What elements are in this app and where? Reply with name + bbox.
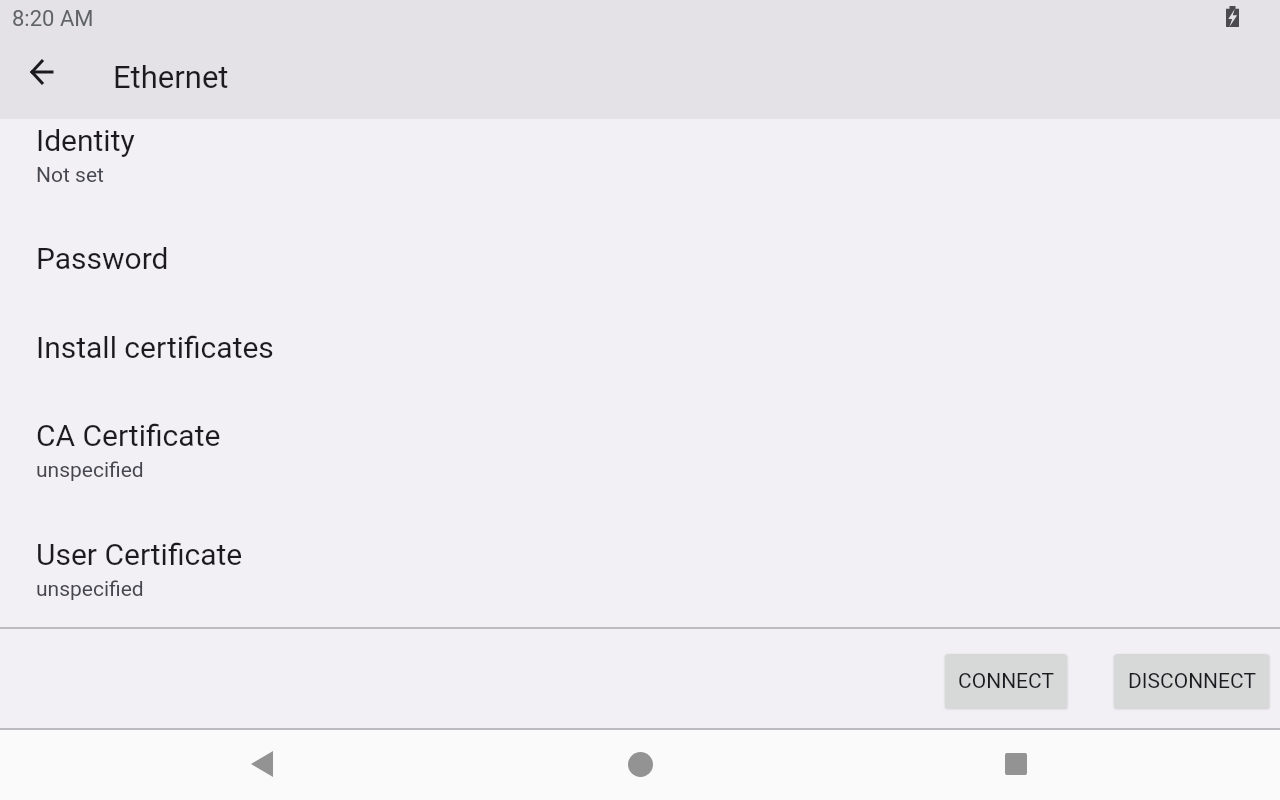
button[interactable]: CONNECT xyxy=(945,654,1067,708)
staticText: Install certificates xyxy=(36,330,274,365)
staticText: Password xyxy=(36,241,169,276)
button[interactable]: Install certificates xyxy=(0,293,1280,383)
staticText: DISCONNECT xyxy=(1128,669,1256,694)
other: Battery charging xyxy=(1226,6,1239,27)
staticText: CONNECT xyxy=(958,669,1054,694)
staticText: unspecified xyxy=(36,458,144,483)
staticText: unspecified xyxy=(36,577,144,602)
button[interactable]: Home xyxy=(616,740,664,788)
staticText: Ethernet xyxy=(113,59,229,95)
button[interactable]: Back xyxy=(238,740,286,788)
button[interactable]: Navigate up xyxy=(18,48,66,96)
button[interactable]: Password xyxy=(0,204,1280,293)
button[interactable]: Identity xyxy=(0,119,1280,204)
button[interactable]: DISCONNECT xyxy=(1114,654,1269,708)
button[interactable]: User Certificate xyxy=(0,502,1280,627)
staticText: CA Certificate xyxy=(36,418,221,453)
staticText: 8:20 AM xyxy=(12,6,94,32)
button[interactable]: CA Certificate xyxy=(0,383,1280,502)
staticText: Not set xyxy=(36,163,104,188)
button[interactable]: Recent apps xyxy=(992,740,1040,788)
staticText: Identity xyxy=(36,123,135,158)
staticText: User Certificate xyxy=(36,537,243,572)
